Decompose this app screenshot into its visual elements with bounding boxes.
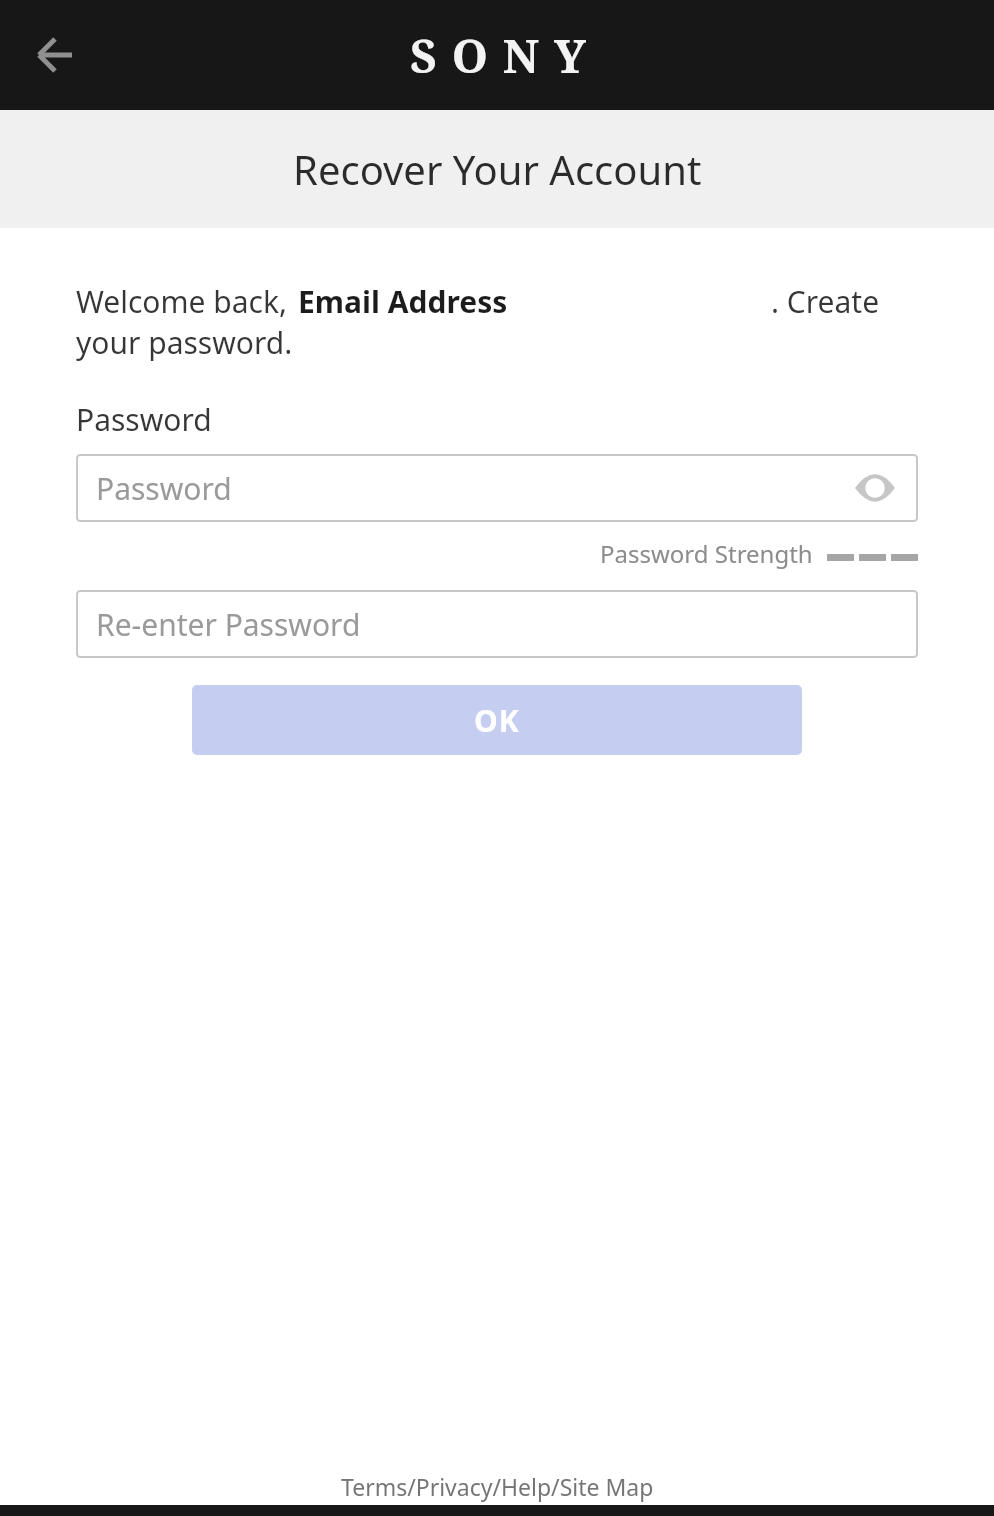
staticText: Password bbox=[96, 468, 232, 509]
staticText: SONY bbox=[410, 24, 601, 87]
staticText: Email Address bbox=[298, 281, 508, 322]
staticText: . Create bbox=[771, 281, 880, 322]
button[interactable]: Re-enter Password bbox=[76, 590, 918, 658]
staticText: OK bbox=[474, 700, 520, 741]
button[interactable] bbox=[846, 464, 904, 512]
button[interactable]: Password bbox=[76, 454, 918, 522]
staticText: Welcome back, bbox=[76, 281, 288, 322]
staticText: Recover Your Account bbox=[293, 142, 702, 196]
button[interactable]: OK bbox=[192, 685, 802, 755]
button[interactable]: Terms/Privacy/Help/Site Map bbox=[0, 1471, 994, 1502]
button[interactable] bbox=[28, 27, 84, 83]
staticText: Password bbox=[76, 399, 212, 440]
staticText: Password Strength bbox=[600, 537, 813, 570]
staticText: Re-enter Password bbox=[96, 604, 361, 645]
staticText: your password. bbox=[76, 322, 293, 363]
staticText: Terms/Privacy/Help/Site Map bbox=[341, 1471, 654, 1502]
